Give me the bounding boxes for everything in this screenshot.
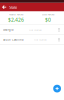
staticText: State Refund [42, 13, 54, 16]
staticText: Not started [29, 28, 41, 31]
staticText: Not started [34, 38, 46, 41]
staticText: South Carolina [3, 38, 23, 41]
button[interactable]: Back [0, 3, 7, 11]
button[interactable]: South Carolina [0, 35, 64, 44]
staticText: State [9, 4, 17, 10]
staticText: $2,426 [8, 16, 24, 23]
button[interactable]: Add a state [53, 85, 61, 92]
button[interactable]: Georgia [0, 25, 64, 35]
staticText: Georgia [3, 28, 13, 32]
staticText: $0 [45, 16, 51, 23]
staticText: Federal Refund [9, 13, 23, 16]
